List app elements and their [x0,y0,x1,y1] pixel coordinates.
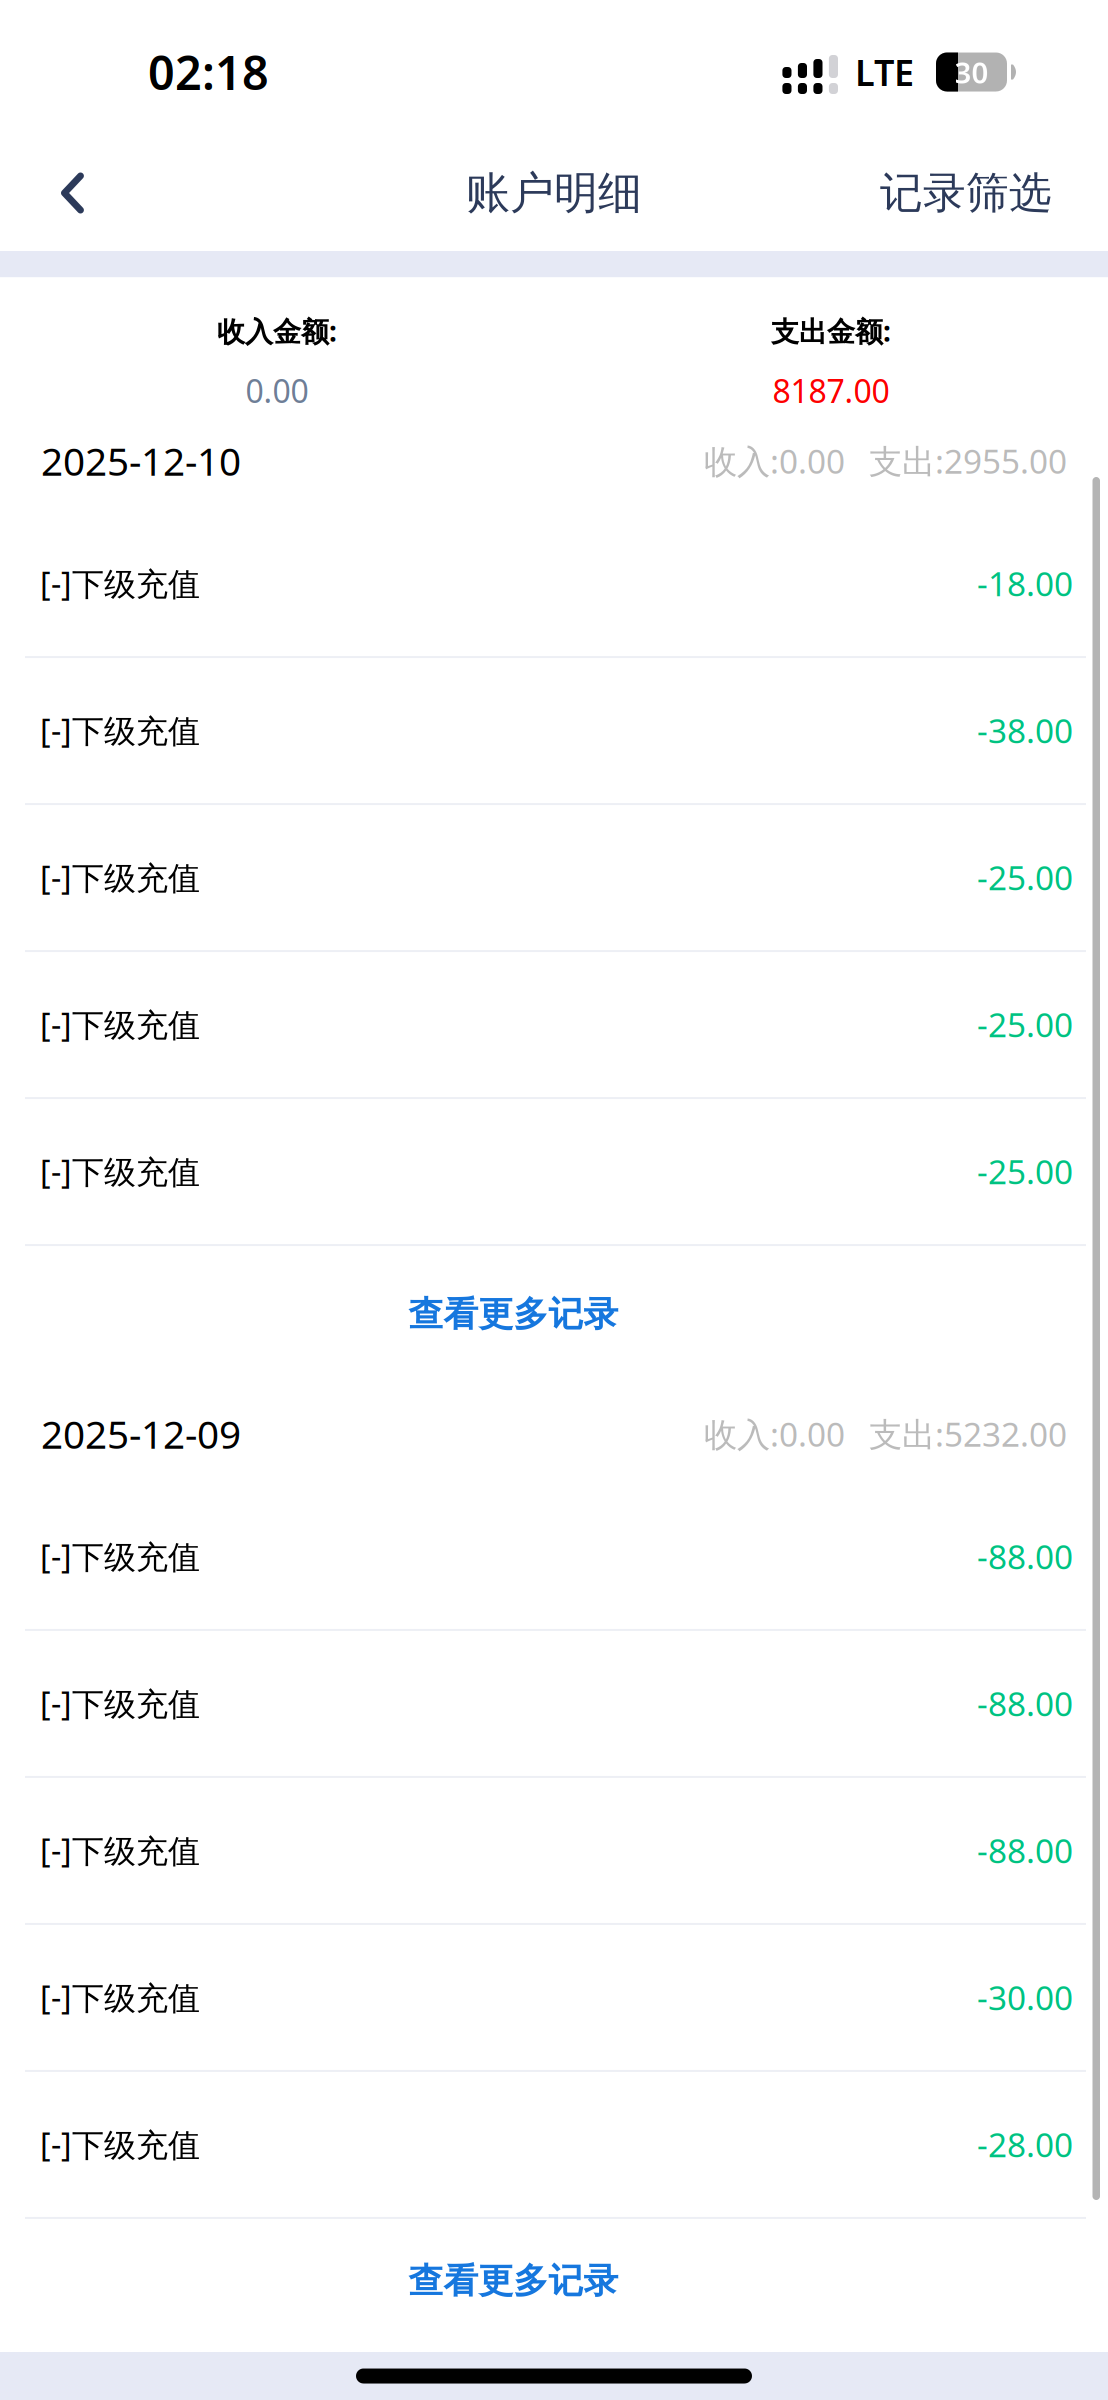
staticText: [-]下级充值 [40,709,200,752]
staticText: 支出:2955.00 [869,439,1067,483]
staticText: -25.00 [977,855,1073,899]
button[interactable]: 记录筛选 [880,135,1108,251]
staticText: [-]下级充值 [40,1535,200,1577]
staticText: -25.00 [977,1002,1073,1046]
staticText: 收入:0.00 [704,439,845,483]
staticText: 8187.00 [772,369,889,412]
staticText: 2025-12-10 [41,435,241,486]
staticText: 收入:0.00 [704,1412,845,1456]
staticText: -88.00 [977,1828,1073,1872]
button[interactable]: [-]下级充值 [0,952,1108,1099]
button[interactable]: [-]下级充值 [0,658,1108,805]
staticText: [-]下级充值 [40,1150,200,1193]
staticText: [-]下级充值 [40,1976,200,2018]
staticText: [-]下级充值 [40,1829,200,1871]
staticText: 记录筛选 [880,167,1052,219]
staticText: 账户明细 [466,166,642,220]
staticText: 0.00 [245,369,308,412]
staticText: 30 [954,52,988,91]
staticText: [-]下级充值 [40,1003,200,1046]
staticText: LTE [855,48,914,96]
button[interactable]: [-]下级充值 [0,1099,1108,1246]
button[interactable]: 查看更多记录 [0,1246,1108,1392]
staticText: 查看更多记录 [408,1293,618,1336]
staticText: -30.00 [977,1975,1073,2019]
staticText: 2025-12-09 [41,1408,241,1459]
staticText: -18.00 [977,561,1073,605]
button[interactable]: [-]下级充值 [0,1631,1108,1778]
staticText: [-]下级充值 [40,2123,200,2165]
staticText: -88.00 [977,1681,1073,1725]
button[interactable]: 查看更多记录 [0,2219,1108,2352]
staticText: 收入金额: [217,312,337,350]
staticText: [-]下级充值 [40,1682,200,1724]
staticText: 查看更多记录 [408,2260,618,2302]
button[interactable]: [-]下级充值 [0,1778,1108,1925]
button[interactable]: [-]下级充值 [0,1925,1108,2072]
staticText: [-]下级充值 [40,856,200,899]
button[interactable]: [-]下级充值 [0,1484,1108,1631]
button[interactable]: [-]下级充值 [0,511,1108,658]
staticText: 支出金额: [771,312,891,350]
staticText: [-]下级充值 [40,562,200,605]
staticText: -25.00 [977,1149,1073,1193]
staticText: 支出:5232.00 [869,1412,1067,1456]
staticText: 02:18 [148,41,269,103]
staticText: -88.00 [977,1534,1073,1578]
button[interactable]: [-]下级充值 [0,2072,1108,2219]
button[interactable]: [-]下级充值 [0,805,1108,952]
staticText: -38.00 [977,708,1073,752]
button[interactable]: Back [0,135,145,251]
staticText: -28.00 [977,2122,1073,2166]
